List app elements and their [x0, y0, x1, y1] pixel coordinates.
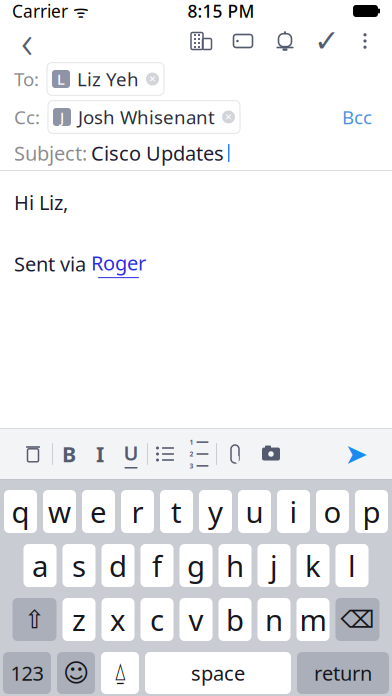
button[interactable]: Company: [180, 24, 222, 58]
button[interactable]: Back: [10, 24, 44, 58]
staticText: To:: [14, 67, 39, 91]
staticText: t: [171, 492, 182, 531]
button[interactable]: Delete draft: [14, 432, 52, 476]
button[interactable]: return: [297, 652, 389, 694]
button[interactable]: j: [257, 544, 290, 587]
staticText: space: [191, 660, 245, 686]
button[interactable]: f: [140, 544, 173, 587]
staticText: ⌫: [340, 606, 374, 633]
staticText: i: [289, 492, 297, 531]
staticText: o: [323, 492, 341, 531]
button[interactable]: Insert photo: [253, 432, 289, 476]
staticText: f: [152, 546, 162, 585]
staticText: ☺: [63, 659, 89, 687]
button[interactable]: ⍙: [101, 652, 139, 694]
staticText: Carrier: [12, 0, 68, 22]
staticText: d: [109, 546, 127, 585]
button[interactable]: k: [296, 544, 329, 587]
staticText: l: [348, 546, 356, 585]
button[interactable]: Label: [222, 24, 264, 58]
button[interactable]: m: [296, 598, 329, 641]
button[interactable]: Numbered list: [182, 432, 216, 476]
button[interactable]: b: [218, 598, 251, 641]
staticText: 8:15 PM: [187, 0, 254, 22]
button[interactable]: x: [101, 598, 134, 641]
button[interactable]: Italic: [85, 432, 115, 476]
button[interactable]: More options: [348, 24, 382, 58]
staticText: c: [150, 600, 164, 639]
button[interactable]: p: [355, 490, 388, 533]
button[interactable]: ⌫: [335, 598, 379, 641]
button[interactable]: 123: [3, 652, 51, 694]
staticText: ✕: [224, 112, 232, 122]
button[interactable]: L: [47, 63, 164, 95]
staticText: x: [110, 600, 126, 639]
staticText: U: [123, 439, 138, 466]
staticText: return: [314, 660, 372, 686]
button[interactable]: e: [82, 490, 115, 533]
button[interactable]: a: [23, 544, 56, 587]
staticText: B: [62, 440, 76, 468]
button[interactable]: d: [101, 544, 134, 587]
button[interactable]: Bcc: [336, 101, 378, 133]
button[interactable]: i: [277, 490, 310, 533]
staticText: 123: [10, 660, 43, 686]
button[interactable]: w: [43, 490, 76, 533]
staticText: I: [96, 440, 104, 468]
staticText: 1: [189, 438, 193, 447]
button[interactable]: g: [179, 544, 212, 587]
staticText: Liz Yeh: [77, 67, 139, 91]
staticText: Bcc: [342, 105, 372, 129]
button[interactable]: n: [257, 598, 290, 641]
button[interactable]: t: [160, 490, 193, 533]
staticText: j: [270, 546, 278, 585]
button[interactable]: J: [48, 101, 240, 133]
button[interactable]: Send: [334, 432, 378, 476]
staticText: v: [188, 600, 203, 639]
staticText: b: [226, 600, 244, 639]
button[interactable]: q: [4, 490, 37, 533]
staticText: h: [226, 546, 244, 585]
staticText: ✕: [148, 74, 156, 84]
staticText: Josh Whisenant: [78, 105, 215, 129]
button[interactable]: Underline: [115, 432, 147, 476]
staticText: z: [72, 600, 86, 639]
staticText: 3: [189, 461, 193, 470]
button[interactable]: Bulleted list: [148, 432, 182, 476]
staticText: k: [305, 546, 321, 585]
staticText: y: [208, 492, 223, 531]
staticText: Cisco Updates: [91, 140, 224, 166]
staticText: ⍙: [113, 661, 127, 685]
staticText: r: [131, 492, 143, 531]
staticText: ➤: [344, 438, 367, 470]
button[interactable]: Bold: [53, 432, 85, 476]
button[interactable]: Reminder: [264, 24, 306, 58]
button[interactable]: Attach file: [217, 432, 253, 476]
button[interactable]: s: [62, 544, 95, 587]
button[interactable]: l: [335, 544, 368, 587]
staticText: s: [72, 546, 86, 585]
button[interactable]: o: [316, 490, 349, 533]
button[interactable]: ☺: [57, 652, 95, 694]
button[interactable]: ⇧: [12, 598, 56, 641]
button[interactable]: u: [238, 490, 271, 533]
staticText: p: [362, 492, 380, 531]
staticText: n: [265, 600, 283, 639]
staticText: g: [187, 546, 205, 585]
staticText: m: [299, 600, 326, 639]
button[interactable]: Roger: [91, 250, 146, 278]
button[interactable]: Send and archive: [306, 24, 348, 58]
button[interactable]: z: [62, 598, 95, 641]
staticText: w: [48, 492, 71, 531]
button[interactable]: r: [121, 490, 154, 533]
button[interactable]: y: [199, 490, 232, 533]
button[interactable]: v: [179, 598, 212, 641]
staticText: Sent via: [14, 251, 91, 277]
staticText: 2: [189, 450, 193, 458]
button[interactable]: c: [140, 598, 173, 641]
button[interactable]: h: [218, 544, 251, 587]
button[interactable]: space: [145, 652, 291, 694]
staticText: Roger: [91, 250, 146, 276]
staticText: a: [32, 546, 48, 585]
staticText: ✓: [314, 24, 340, 58]
